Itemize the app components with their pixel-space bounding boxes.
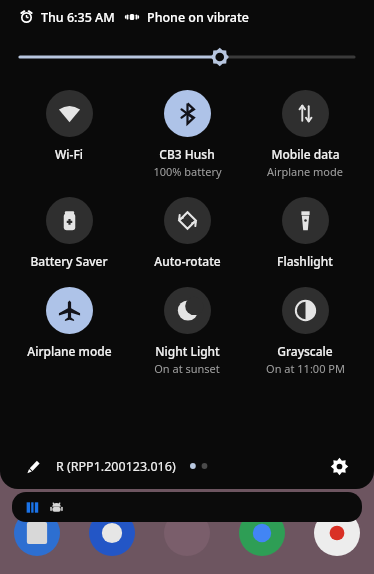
staticText: Airplane mode — [27, 343, 112, 359]
staticText: Night Light — [155, 343, 220, 359]
button[interactable]: Auto-rotate — [128, 195, 246, 271]
staticText: Phone on vibrate — [147, 9, 249, 26]
staticText: R (RPP1.200123.016) — [56, 458, 176, 475]
staticText: Battery Saver — [30, 253, 108, 269]
button[interactable]: Mobile data — [246, 88, 364, 181]
staticText: On at 11:00 PM — [266, 361, 345, 376]
button[interactable]: Edit tiles — [20, 453, 46, 479]
staticText: Wi-Fi — [55, 146, 83, 162]
button[interactable]: Settings — [324, 451, 354, 481]
staticText: CB3 Hush — [159, 146, 215, 162]
button[interactable]: Battery Saver — [10, 195, 128, 271]
button[interactable]: CB3 Hush — [128, 88, 246, 181]
button[interactable] — [20, 44, 354, 70]
staticText: Flashlight — [277, 253, 333, 269]
button[interactable]: App — [239, 510, 285, 556]
button[interactable]: App — [89, 510, 135, 556]
button[interactable]: Night Light — [128, 285, 246, 378]
staticText: Mobile data — [271, 146, 340, 162]
button[interactable]: App — [164, 510, 210, 556]
button[interactable]: Wi-Fi — [10, 88, 128, 164]
button[interactable]: Flashlight — [246, 195, 364, 271]
button[interactable]: Airplane mode — [10, 285, 128, 361]
button[interactable]: App — [14, 510, 60, 556]
staticText: On at sunset — [154, 361, 220, 376]
button[interactable]: App — [314, 510, 360, 556]
staticText: Grayscale — [277, 343, 333, 359]
staticText: 100% battery — [153, 164, 222, 179]
button[interactable]: Grayscale — [246, 285, 364, 378]
staticText: Airplane mode — [267, 164, 343, 179]
staticText: Auto-rotate — [154, 253, 221, 269]
staticText: Thu 6:35 AM — [41, 9, 115, 26]
